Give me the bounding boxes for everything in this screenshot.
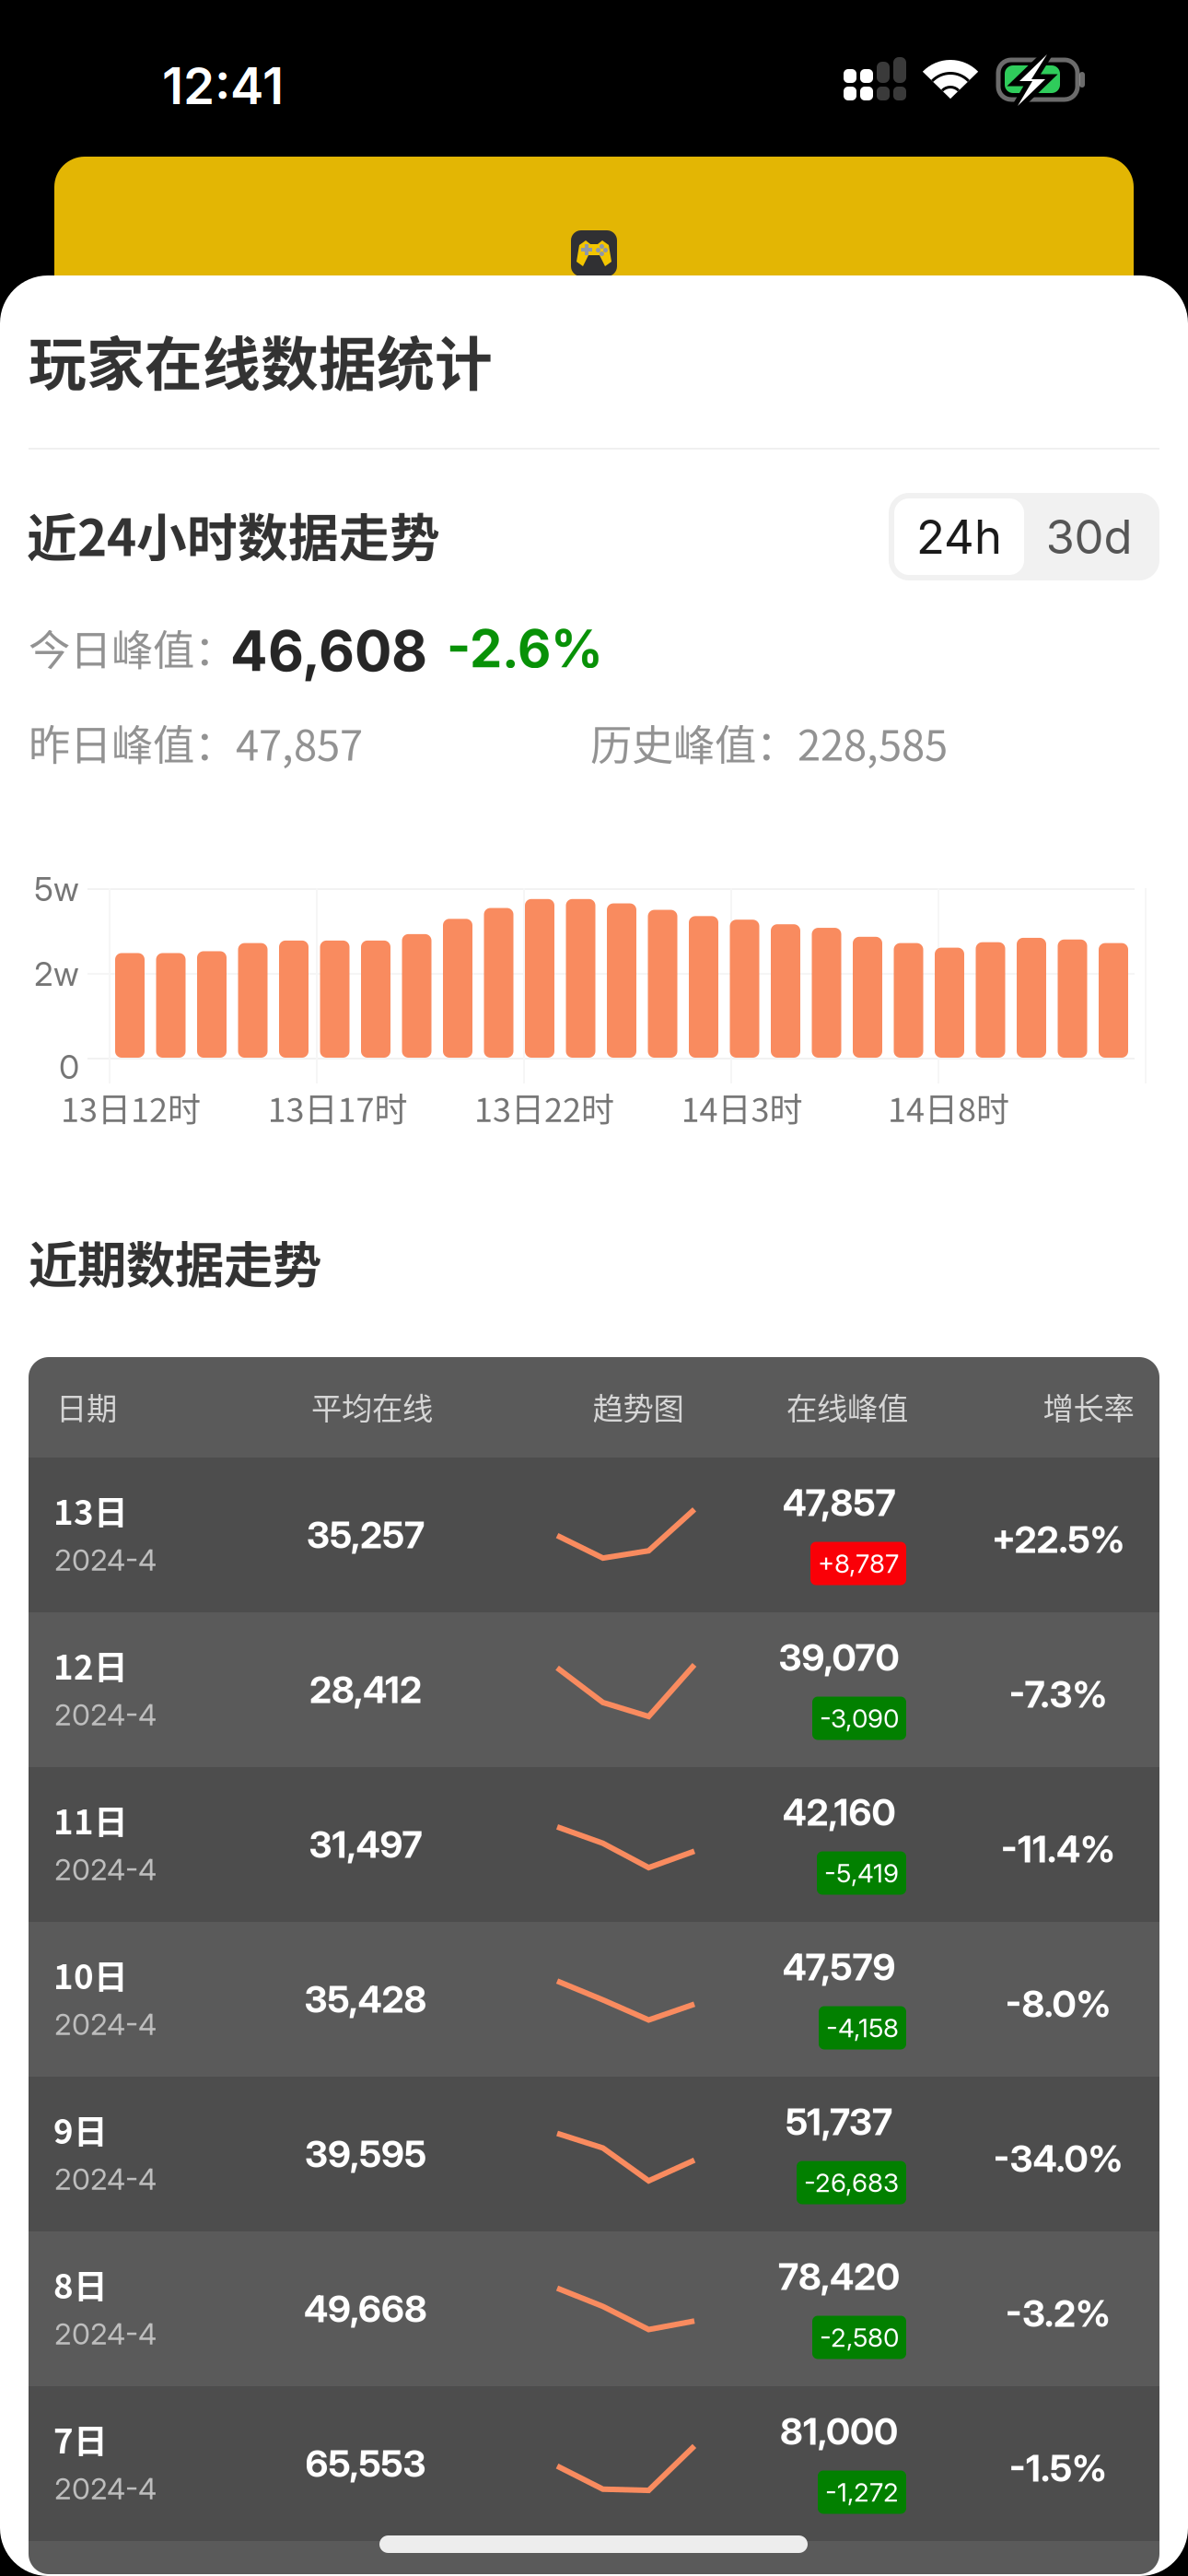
staticText: 24h <box>916 508 1002 565</box>
staticText: 13日22时 <box>474 1083 614 1131</box>
staticText: 10日 <box>53 1950 128 1999</box>
staticText: 2024-4 <box>54 1697 157 1732</box>
staticText: -5,419 <box>824 1857 899 1889</box>
button[interactable]: 9日 <box>29 2077 1159 2231</box>
staticText: -4,158 <box>826 2012 899 2043</box>
staticText: -34.0% <box>993 2136 1123 2181</box>
button[interactable]: 7日 <box>29 2386 1159 2541</box>
staticText: 35,428 <box>304 1977 427 2022</box>
staticText: 趋势图 <box>593 1384 684 1429</box>
staticText: 近24小时数据走势 <box>27 498 440 570</box>
staticText: 42,160 <box>782 1790 896 1835</box>
staticText: 8日 <box>53 2260 108 2308</box>
staticText: 78,420 <box>778 2254 900 2299</box>
staticText: 2024-4 <box>54 2316 157 2351</box>
staticText: 2024-4 <box>54 2161 157 2197</box>
staticText: -1.5% <box>1009 2446 1107 2491</box>
staticText: 11日 <box>53 1795 128 1844</box>
staticText: 12日 <box>53 1640 128 1689</box>
button[interactable]: 30d <box>1024 498 1154 575</box>
staticText: 增长率 <box>1043 1384 1134 1429</box>
button[interactable]: 8日 <box>29 2231 1159 2386</box>
staticText: 30d <box>1046 508 1132 565</box>
staticText: 49,668 <box>304 2287 427 2331</box>
staticText: -26,683 <box>804 2167 899 2198</box>
staticText: 7日 <box>53 2414 108 2463</box>
staticText: 2w <box>34 954 79 994</box>
staticText: -11.4% <box>1001 1827 1115 1871</box>
staticText: -1,272 <box>825 2477 899 2508</box>
staticText: 5w <box>34 869 79 909</box>
staticText: -2.6% <box>447 617 603 680</box>
button[interactable]: 13日 <box>29 1458 1159 1612</box>
staticText: 39,595 <box>305 2132 426 2176</box>
staticText: -3.2% <box>1006 2291 1111 2336</box>
staticText: 在线峰值 <box>786 1384 908 1429</box>
button[interactable]: 11日 <box>29 1767 1159 1922</box>
staticText: 2024-4 <box>54 1542 157 1578</box>
staticText: 35,257 <box>307 1513 425 1557</box>
staticText: 13日12时 <box>61 1083 201 1131</box>
staticText: 65,553 <box>305 2441 426 2486</box>
staticText: 历史峰值：228,585 <box>590 712 948 773</box>
staticText: 31,497 <box>309 1822 422 1867</box>
button[interactable]: 10日 <box>29 1922 1159 2077</box>
staticText: +8,787 <box>818 1548 899 1579</box>
staticText: 39,070 <box>779 1635 899 1680</box>
staticText: 14日8时 <box>888 1083 1009 1131</box>
staticText: 2024-4 <box>54 2006 157 2042</box>
staticText: 昨日峰值：47,857 <box>29 712 363 773</box>
button[interactable]: 12日 <box>29 1612 1159 1767</box>
staticText: 81,000 <box>780 2409 898 2454</box>
staticText: 9日 <box>53 2105 108 2154</box>
staticText: 今日峰值： <box>29 617 236 678</box>
staticText: 13日 <box>53 1486 128 1535</box>
staticText: 14日3时 <box>681 1083 803 1131</box>
staticText: -7.3% <box>1009 1672 1107 1717</box>
staticText: +22.5% <box>991 1517 1125 1562</box>
staticText: 玩家在线数据统计 <box>29 318 493 401</box>
staticText: 2024-4 <box>54 2471 157 2506</box>
staticText: 46,608 <box>230 617 427 684</box>
staticText: 0 <box>59 1047 79 1087</box>
staticText: 2024-4 <box>54 1851 157 1887</box>
staticText: 28,412 <box>309 1667 422 1712</box>
staticText: -8.0% <box>1005 1982 1111 2026</box>
staticText: 12:41 <box>162 55 284 116</box>
staticText: 47,857 <box>782 1480 896 1525</box>
staticText: 日期 <box>56 1384 117 1429</box>
staticText: -2,580 <box>820 2322 899 2353</box>
staticText: 平均在线 <box>311 1384 433 1429</box>
staticText: 47,579 <box>782 1945 896 1989</box>
button[interactable]: 24h <box>894 498 1024 575</box>
staticText: 近期数据走势 <box>29 1226 321 1297</box>
staticText: 13日17时 <box>268 1083 408 1131</box>
staticText: -3,090 <box>820 1703 899 1734</box>
staticText: 51,737 <box>786 2099 892 2144</box>
